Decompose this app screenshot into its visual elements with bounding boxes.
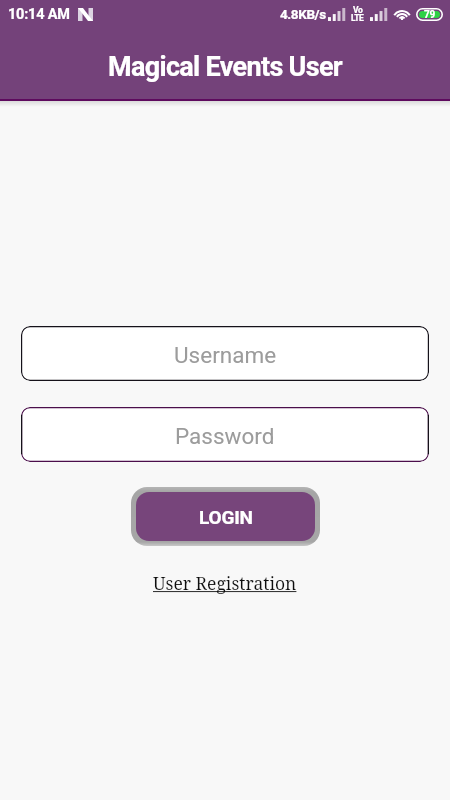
staticText: Username (174, 342, 277, 368)
staticText: 79 (424, 9, 435, 21)
button[interactable]: Password (21, 407, 429, 462)
button[interactable]: User Registration (145, 567, 305, 599)
staticText: LTE (351, 13, 364, 23)
staticText: 10:14 AM (8, 6, 70, 23)
staticText: 4.8KB/s (280, 6, 326, 22)
staticText: Vo (353, 5, 363, 15)
button[interactable]: LOGIN (136, 492, 315, 541)
staticText: LOGIN (199, 506, 253, 528)
staticText: Magical Events User (108, 51, 343, 83)
staticText: Password (175, 423, 275, 449)
button[interactable]: Username (21, 326, 429, 381)
